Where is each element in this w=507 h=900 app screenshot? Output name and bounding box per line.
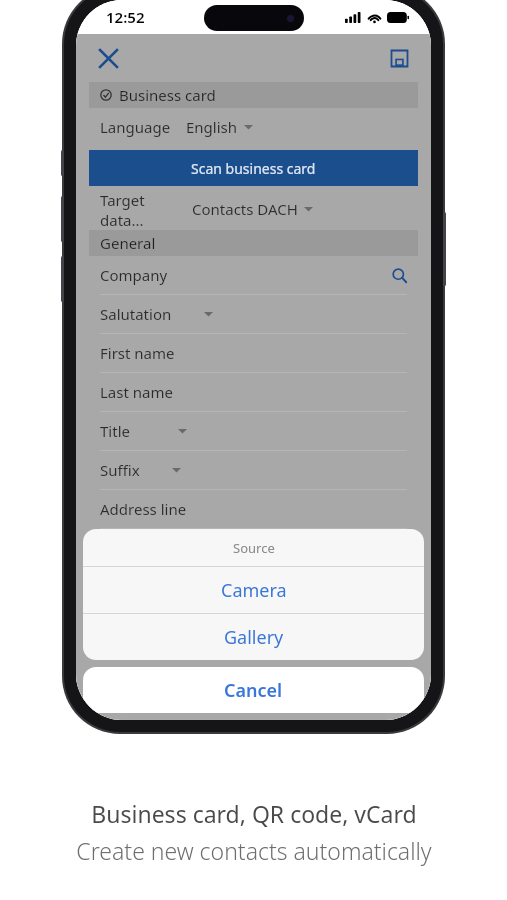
staticText: Last name	[100, 382, 173, 402]
staticText: Target data...	[100, 190, 192, 228]
staticText: English	[186, 117, 238, 137]
staticText: Salutation	[100, 304, 172, 324]
staticText: ZIP	[96, 693, 119, 713]
staticText: General	[100, 233, 156, 253]
staticText: Source	[233, 539, 275, 557]
button[interactable]: Cancel	[83, 667, 424, 713]
button[interactable]: Close	[90, 40, 126, 76]
staticText: Gallery	[224, 625, 284, 650]
staticText: Title	[100, 421, 130, 441]
staticText: Language	[100, 117, 171, 137]
button[interactable]: Last name	[76, 373, 431, 412]
button[interactable]: First name	[76, 334, 431, 373]
staticText: Business card	[119, 85, 216, 105]
button[interactable]: Scan business card	[89, 150, 418, 186]
button[interactable]: Suffix	[76, 451, 431, 490]
staticText: Contacts DACH	[192, 199, 298, 219]
staticText: Business card, QR code, vCard	[91, 798, 417, 829]
button[interactable]: Camera	[83, 567, 424, 613]
staticText: First name	[100, 343, 175, 363]
staticText: Scan business card	[191, 159, 316, 178]
button[interactable]: Address line	[76, 490, 431, 529]
staticText: Company	[100, 265, 168, 285]
button[interactable]: Title	[76, 412, 431, 451]
button[interactable]: Target data...	[76, 190, 431, 228]
staticText: Suffix	[100, 460, 140, 480]
staticText: Cancel	[224, 678, 283, 703]
button[interactable]: Save	[381, 40, 417, 76]
other: Search	[392, 268, 407, 283]
button[interactable]: Language	[76, 108, 431, 146]
staticText: Create new contacts automatically	[76, 835, 432, 866]
button[interactable]: Company	[76, 256, 431, 295]
staticText: Camera	[221, 578, 287, 603]
button[interactable]: Gallery	[83, 614, 424, 660]
staticText: Address line	[100, 499, 187, 519]
button[interactable]: Salutation	[76, 295, 431, 334]
staticText: 12:52	[106, 7, 145, 27]
